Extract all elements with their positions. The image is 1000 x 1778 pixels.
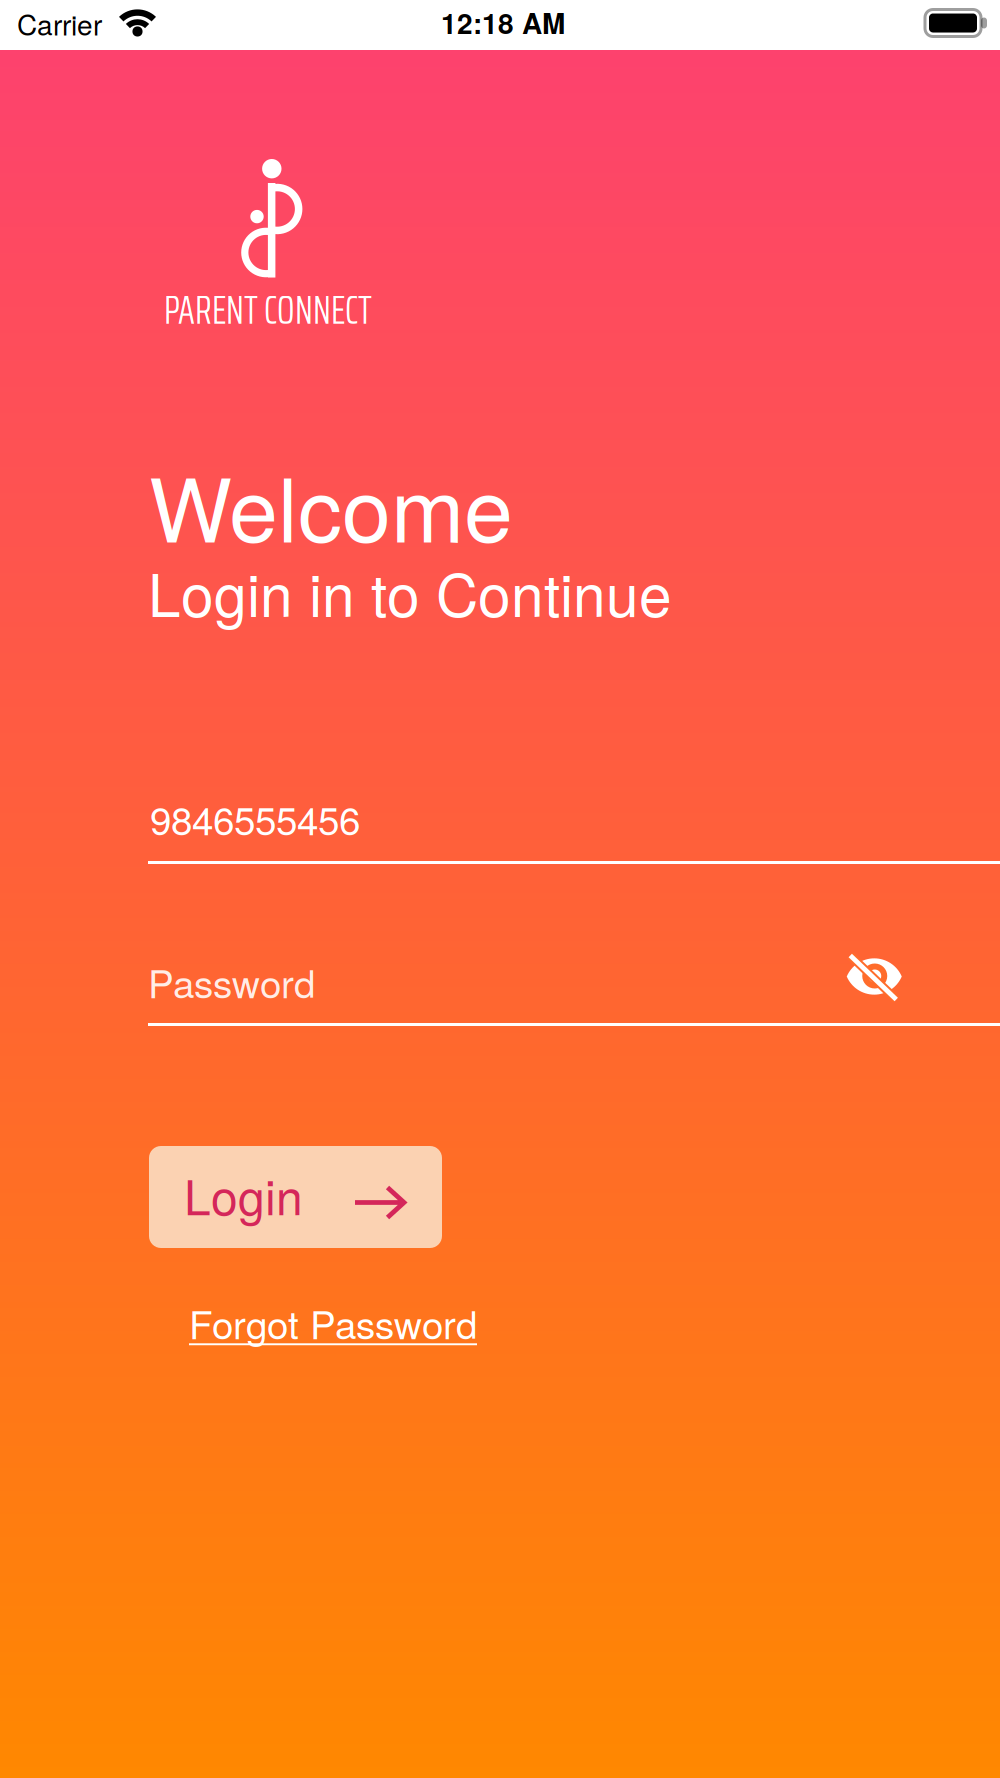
button[interactable]: Forgot Password: [189, 1295, 477, 1350]
staticText: 9846555456: [150, 791, 360, 846]
staticText: Carrier: [17, 3, 102, 43]
staticText: Welcome: [149, 441, 513, 567]
staticText: Login in to Continue: [148, 550, 672, 634]
button[interactable]: Login: [149, 1146, 442, 1248]
button[interactable]: Show password: [846, 942, 902, 1002]
staticText: 12:18 AM: [441, 2, 565, 42]
staticText: PARENT CONNECT: [164, 278, 372, 341]
staticText: Password: [148, 954, 315, 1009]
staticText: Forgot Password: [189, 1295, 477, 1350]
staticText: Login: [184, 1160, 303, 1229]
